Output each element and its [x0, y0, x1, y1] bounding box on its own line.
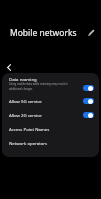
staticText: Allow 2G service [9, 112, 80, 118]
staticText: Data roaming [9, 76, 37, 82]
staticText: Using mobile data while roaming may resu… [9, 82, 68, 91]
button[interactable]: Edit [84, 27, 98, 38]
staticText: Mobile networks [10, 27, 77, 38]
button[interactable]: Allow 2G service [2, 108, 99, 122]
button[interactable]: Access Point Names [2, 122, 99, 136]
button[interactable]: Back [2, 64, 16, 71]
button[interactable]: Toggle [83, 98, 94, 104]
staticText: Allow 5G service [9, 98, 80, 104]
staticText: Network operators [9, 140, 94, 146]
button[interactable]: Allow 5G service [2, 94, 99, 108]
button[interactable]: Toggle [83, 112, 94, 118]
button[interactable]: Toggle [83, 85, 94, 91]
staticText: Access Point Names [9, 126, 94, 132]
button[interactable]: Network operators [2, 136, 99, 150]
button[interactable]: Data roaming [2, 73, 99, 94]
